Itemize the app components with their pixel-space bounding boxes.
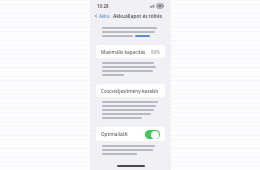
staticText: Akkuállapot és töltés xyxy=(113,13,163,20)
button[interactable]: Csúcsteljesítmény-kezelés xyxy=(96,84,165,97)
staticText: Csúcsteljesítmény-kezelés xyxy=(101,88,160,94)
staticText: 10:28 xyxy=(97,3,109,9)
button[interactable]: Optimalizált akkutöltés xyxy=(96,127,165,141)
button[interactable]: Optimalizált akkutöltés bekapcsolva xyxy=(145,130,160,139)
button[interactable]: Akku xyxy=(93,12,111,20)
staticText: Akku xyxy=(99,13,110,19)
staticText: 88% xyxy=(151,49,160,55)
button[interactable]: Maximális kapacitás xyxy=(96,45,165,58)
staticText: Optimalizált akkutöltés xyxy=(101,131,145,137)
staticText: Maximális kapacitás xyxy=(101,49,151,55)
